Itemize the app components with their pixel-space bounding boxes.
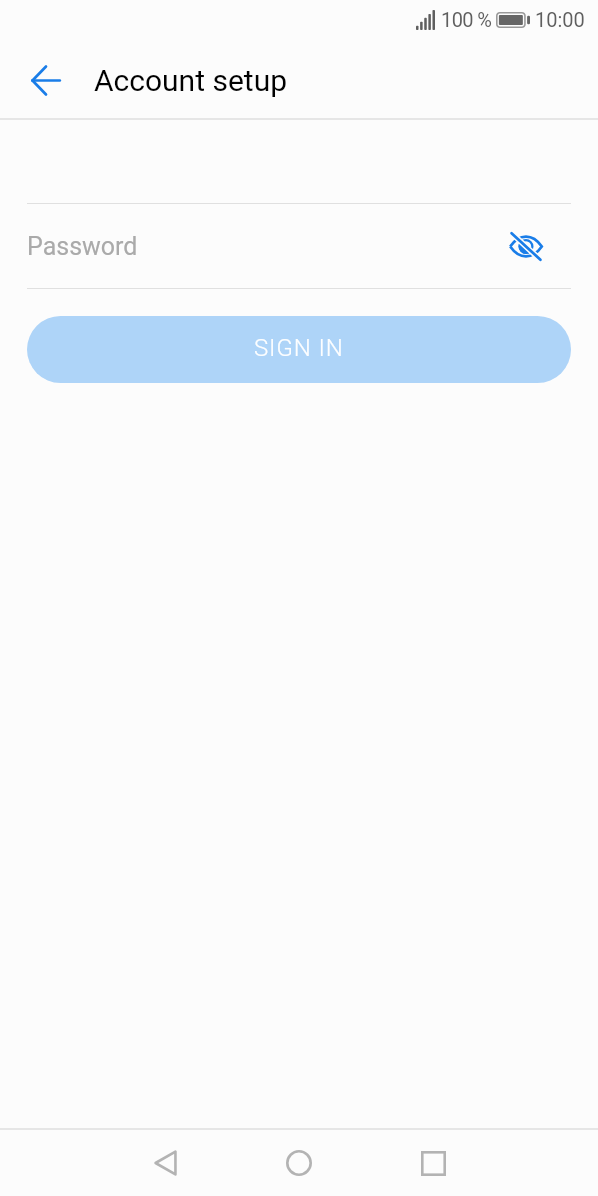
button[interactable]: Password — [27, 204, 571, 288]
button[interactable]: Show password — [502, 222, 550, 270]
staticText: SIGN IN — [254, 334, 344, 362]
staticText: Account setup — [94, 63, 288, 98]
staticText: 10:00 — [535, 8, 585, 31]
staticText: Password — [27, 232, 138, 261]
button[interactable]: Back — [124, 1130, 206, 1196]
button[interactable]: Home — [258, 1130, 340, 1196]
button[interactable]: SIGN IN — [27, 316, 571, 383]
button[interactable]: Recent apps — [392, 1130, 474, 1196]
staticText: 100 % — [441, 8, 492, 31]
button[interactable]: Back — [14, 50, 78, 114]
